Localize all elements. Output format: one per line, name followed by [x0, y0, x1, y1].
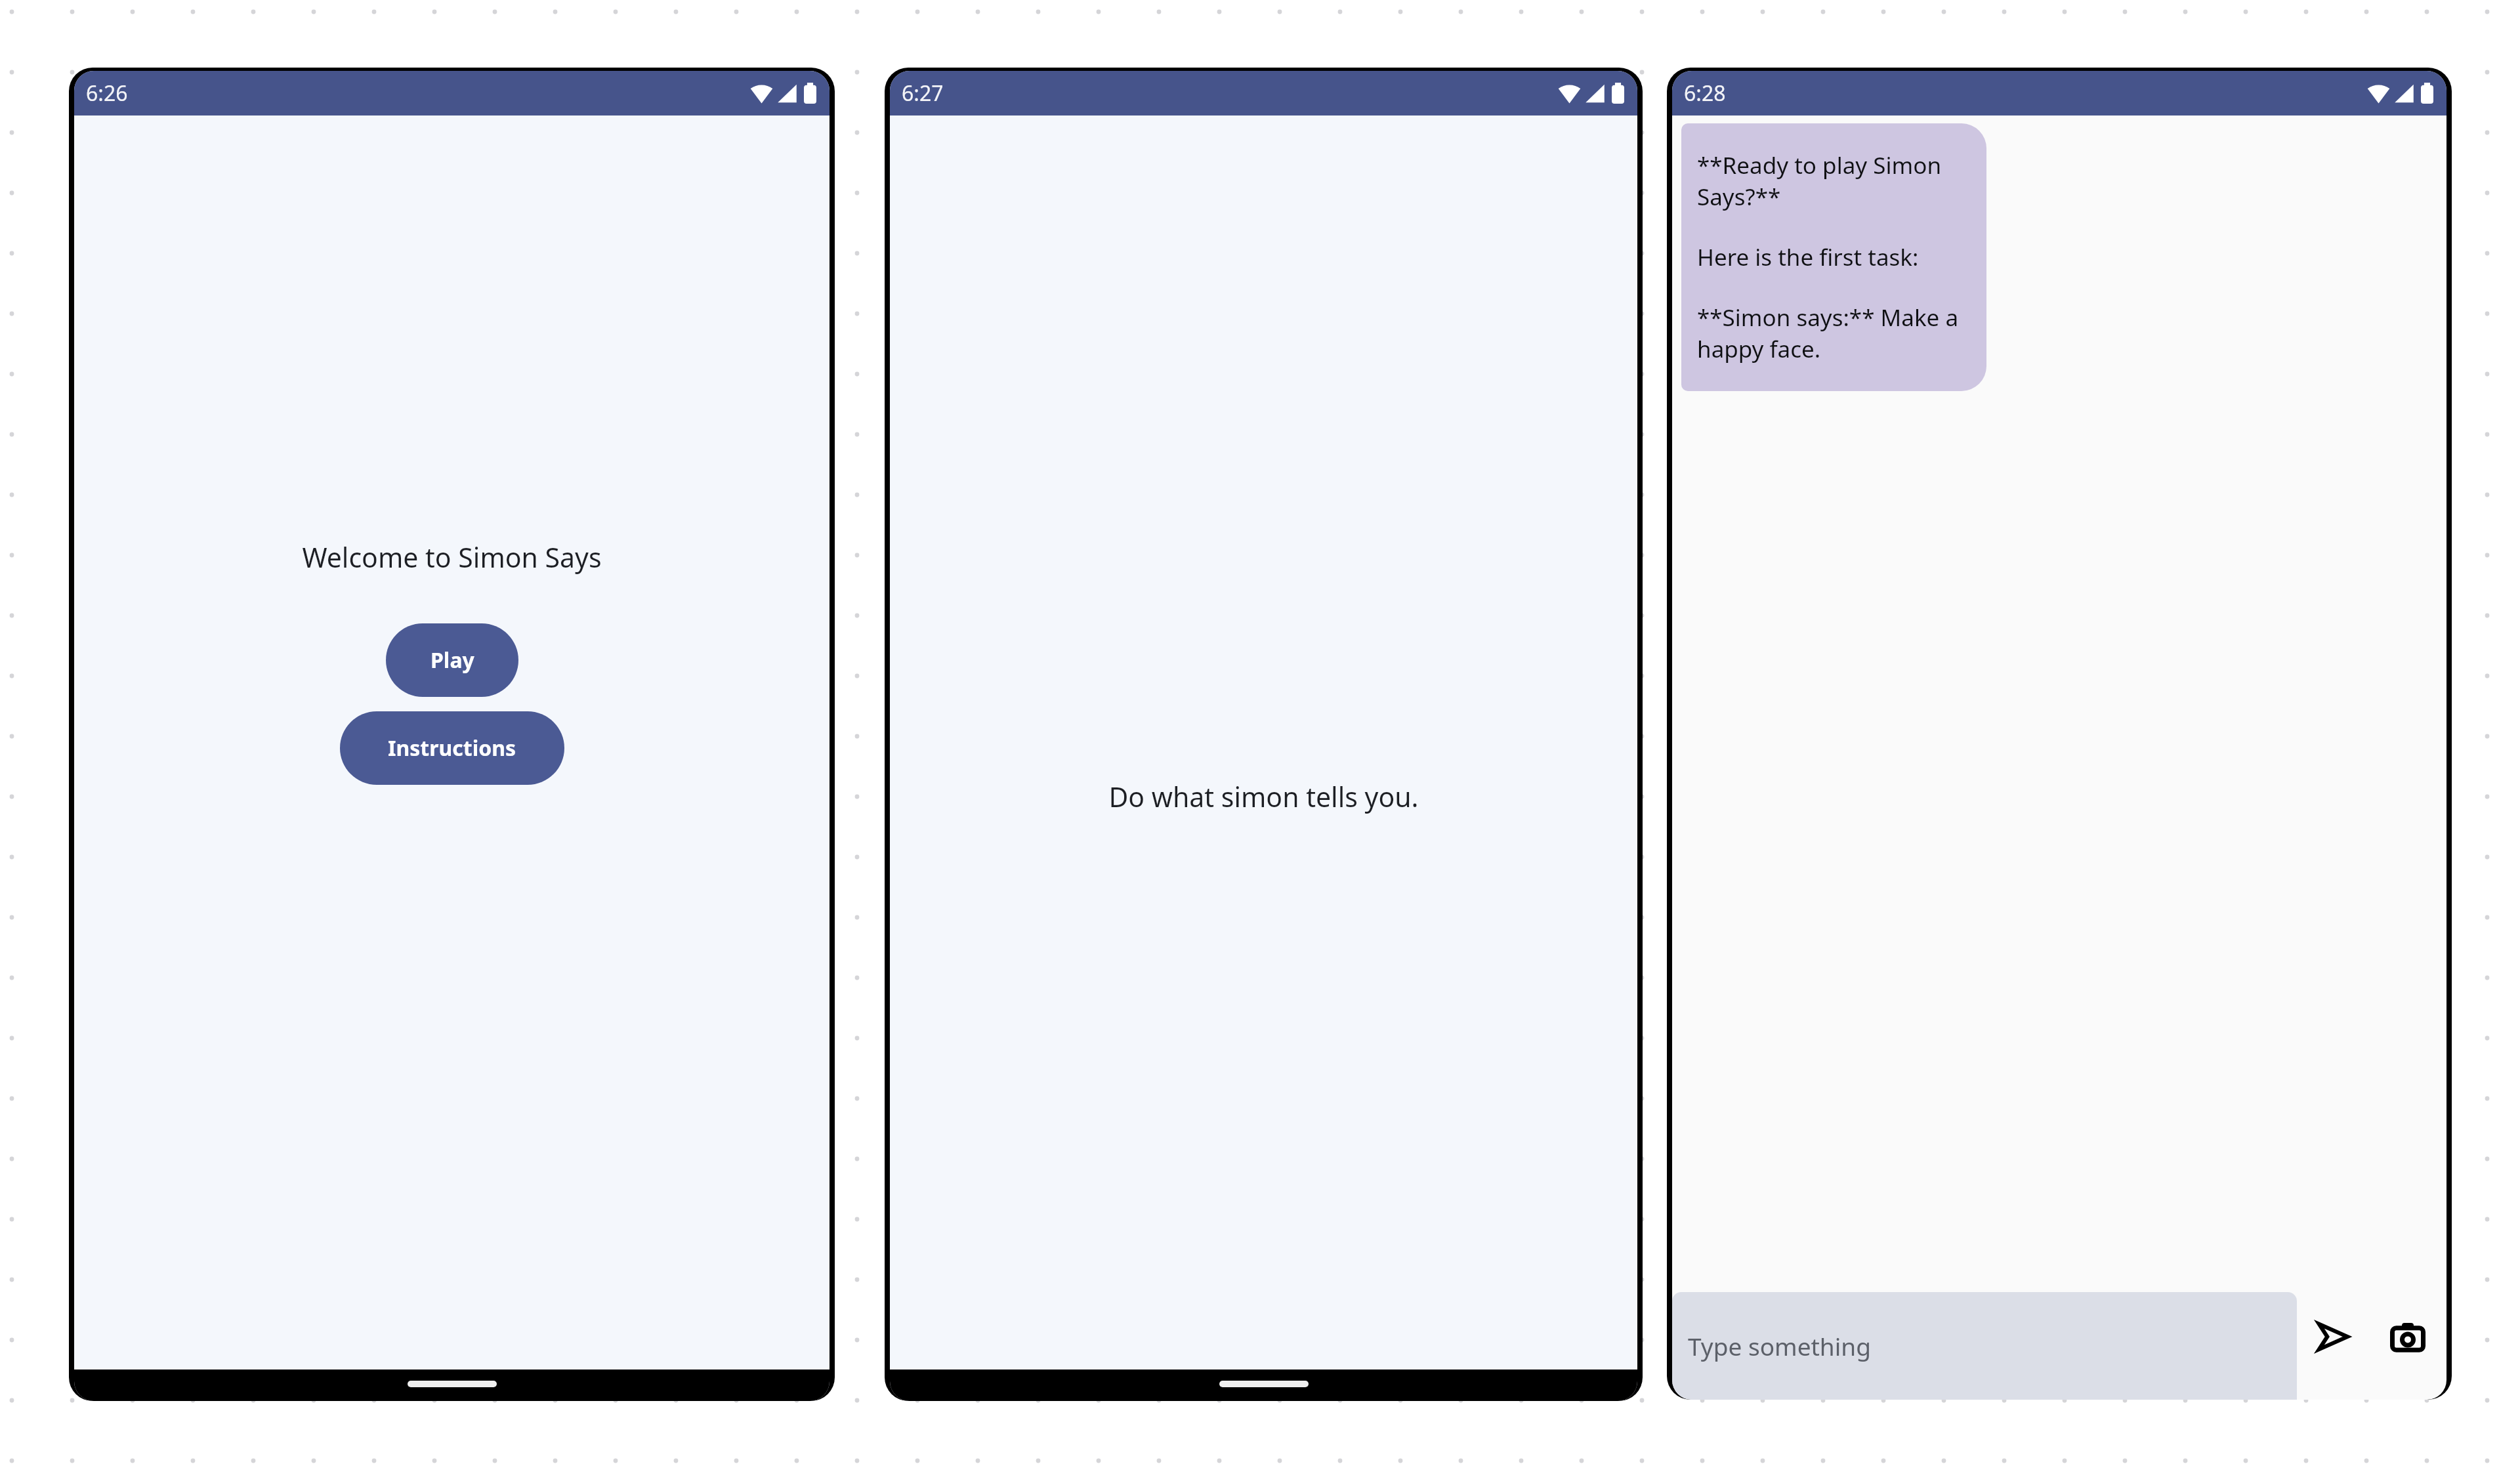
staticText: **Simon says:** Make a happy face. [1697, 302, 1971, 365]
button[interactable]: **Ready to play Simon Says?** [1681, 123, 1986, 391]
staticText: Do what simon tells you. [1108, 778, 1419, 815]
button[interactable]: Camera [2369, 1292, 2446, 1400]
staticText: Instructions [388, 734, 516, 763]
staticText: **Ready to play Simon Says?** [1697, 150, 1971, 213]
button[interactable]: Play [386, 623, 518, 697]
staticText: Play [430, 646, 474, 675]
staticText: 6:28 [1684, 79, 1726, 108]
staticText: Welcome to Simon Says [302, 539, 602, 575]
button[interactable]: Send [2297, 1292, 2369, 1400]
button[interactable]: Instructions [340, 711, 564, 785]
staticText: 6:27 [902, 79, 944, 108]
staticText: Type something [1688, 1329, 1871, 1362]
staticText: 6:26 [86, 79, 128, 108]
staticText: Here is the first task: [1697, 241, 1919, 273]
button[interactable]: Type something [1672, 1292, 2297, 1400]
